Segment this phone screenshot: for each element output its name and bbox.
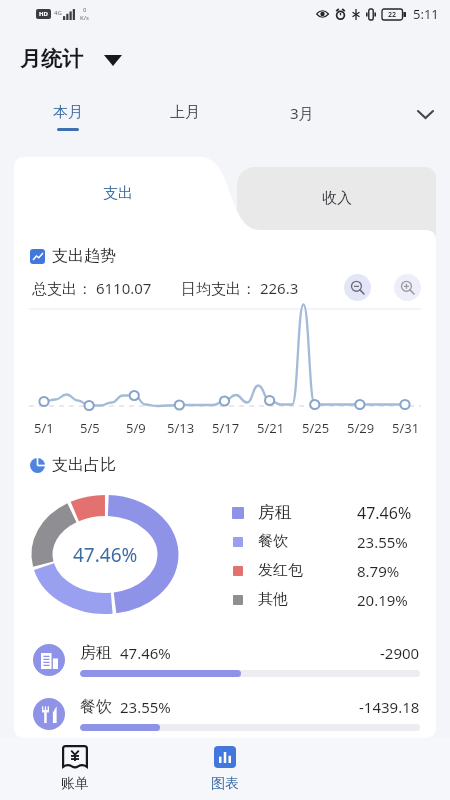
- button[interactable]: More periods: [400, 103, 450, 149]
- button[interactable]: 3月: [243, 103, 360, 149]
- staticText: 日均支出： 226.3: [181, 278, 299, 298]
- staticText: 23.55%: [357, 532, 408, 552]
- staticText: 支出趋势: [52, 246, 116, 266]
- staticText: 5/17: [212, 419, 240, 437]
- staticText: 总支出： 6110.07: [32, 278, 152, 298]
- staticText: HD: [39, 10, 48, 18]
- staticText: 0: [83, 6, 87, 14]
- button[interactable]: 其他: [231, 585, 436, 614]
- staticText: 5/25: [302, 419, 330, 437]
- staticText: 47.46%: [120, 643, 171, 663]
- staticText: 收入: [322, 189, 352, 208]
- staticText: K/s: [80, 14, 89, 22]
- staticText: 47.46%: [357, 502, 412, 524]
- staticText: 5/31: [392, 419, 420, 437]
- button[interactable]: 支出: [14, 157, 221, 230]
- staticText: 发红包: [258, 561, 303, 580]
- staticText: 5/9: [126, 419, 146, 437]
- staticText: 5/5: [80, 419, 100, 437]
- staticText: 20.19%: [357, 590, 408, 610]
- button[interactable]: 图表: [150, 738, 300, 800]
- staticText: 餐饮: [258, 532, 288, 551]
- staticText: 22: [388, 10, 397, 20]
- staticText: 房租: [80, 643, 112, 663]
- staticText: 上月: [170, 103, 200, 122]
- button[interactable]: 房租: [33, 633, 420, 687]
- button[interactable]: 发红包: [231, 556, 436, 585]
- staticText: 其他: [258, 590, 288, 609]
- button[interactable]: 收入: [237, 167, 436, 230]
- staticText: 47.46%: [73, 542, 138, 568]
- staticText: 23.55%: [120, 697, 171, 717]
- staticText: 3月: [290, 103, 314, 123]
- staticText: 本月: [53, 103, 83, 122]
- staticText: 5/13: [167, 419, 195, 437]
- staticText: 房租: [258, 502, 292, 523]
- staticText: 账单: [61, 775, 89, 793]
- button[interactable]: Zoom out: [344, 274, 371, 301]
- button[interactable]: 餐饮: [231, 527, 436, 556]
- staticText: 5:11: [413, 5, 439, 23]
- staticText: 餐饮: [80, 697, 112, 717]
- staticText: 5/1: [34, 419, 54, 437]
- staticText: 5/21: [257, 419, 285, 437]
- staticText: 5/29: [347, 419, 375, 437]
- button[interactable]: 账单: [0, 738, 150, 800]
- staticText: 图表: [211, 775, 239, 793]
- staticText: -1439.18: [359, 697, 420, 717]
- staticText: 8.79%: [357, 561, 400, 581]
- staticText: 月统计: [20, 46, 83, 72]
- button[interactable]: 餐饮: [33, 687, 420, 741]
- staticText: 支出: [103, 184, 133, 203]
- button[interactable]: 房租: [231, 498, 436, 527]
- staticText: 4G: [54, 9, 62, 17]
- staticText: 支出占比: [52, 455, 116, 475]
- button[interactable]: 上月: [126, 103, 243, 149]
- button[interactable]: 本月: [9, 103, 126, 149]
- staticText: -2900: [380, 643, 420, 663]
- button[interactable]: Zoom in: [394, 274, 421, 301]
- button[interactable]: Select period: [100, 48, 126, 72]
